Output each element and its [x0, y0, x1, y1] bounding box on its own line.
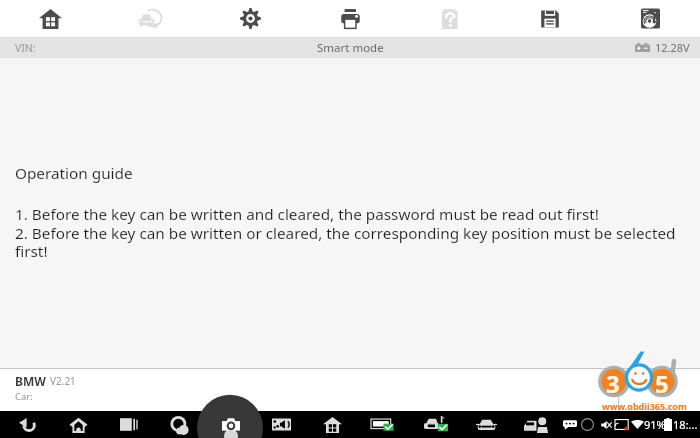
- button[interactable]: Screenshot: [222, 418, 240, 432]
- button[interactable]: VCI connected: [371, 416, 395, 433]
- staticText: 12.28V: [655, 40, 690, 55]
- button[interactable]: Messages: [563, 419, 577, 430]
- staticText: VIN:: [15, 41, 36, 55]
- staticText: BMW: [15, 373, 46, 389]
- staticText: V2.21: [50, 374, 76, 388]
- button[interactable]: Remote support: [524, 417, 549, 433]
- button[interactable]: App home: [323, 417, 342, 433]
- staticText: Operation guide: [15, 163, 133, 184]
- button[interactable]: Save: [500, 0, 600, 37]
- button[interactable]: Battery: [664, 418, 672, 431]
- button[interactable]: Settings: [200, 0, 300, 37]
- button[interactable]: Home: [0, 0, 100, 37]
- staticText: Car:: [15, 390, 33, 403]
- staticText: 91%: [644, 417, 666, 432]
- staticText: 5: [655, 367, 669, 400]
- button[interactable]: Screen record: [272, 417, 291, 432]
- button[interactable]: Data recorder: [600, 0, 700, 37]
- button[interactable]: Help: [400, 0, 500, 37]
- button[interactable]: Print: [300, 0, 400, 37]
- staticText: Smart mode: [317, 40, 384, 56]
- button[interactable]: Home: [69, 417, 88, 433]
- staticText: 1. Before the key can be written and cle…: [15, 204, 688, 261]
- staticText: 18:...: [673, 417, 698, 432]
- button[interactable]: Assistant: [170, 416, 189, 434]
- button[interactable]: Back: [19, 417, 36, 432]
- staticText: www.obdii365.com: [602, 400, 687, 412]
- button[interactable]: Silent: [600, 419, 612, 431]
- button[interactable]: Vehicle: [476, 418, 497, 432]
- button[interactable]: Vehicle: [100, 0, 200, 37]
- button[interactable]: Vehicle connected: [424, 416, 448, 433]
- button[interactable]: Recent apps: [120, 417, 139, 432]
- button[interactable]: Cast: [615, 418, 629, 431]
- button[interactable]: Bluetooth: [581, 418, 594, 431]
- staticText: 3: [606, 367, 620, 400]
- button[interactable]: Wi-Fi: [631, 419, 644, 430]
